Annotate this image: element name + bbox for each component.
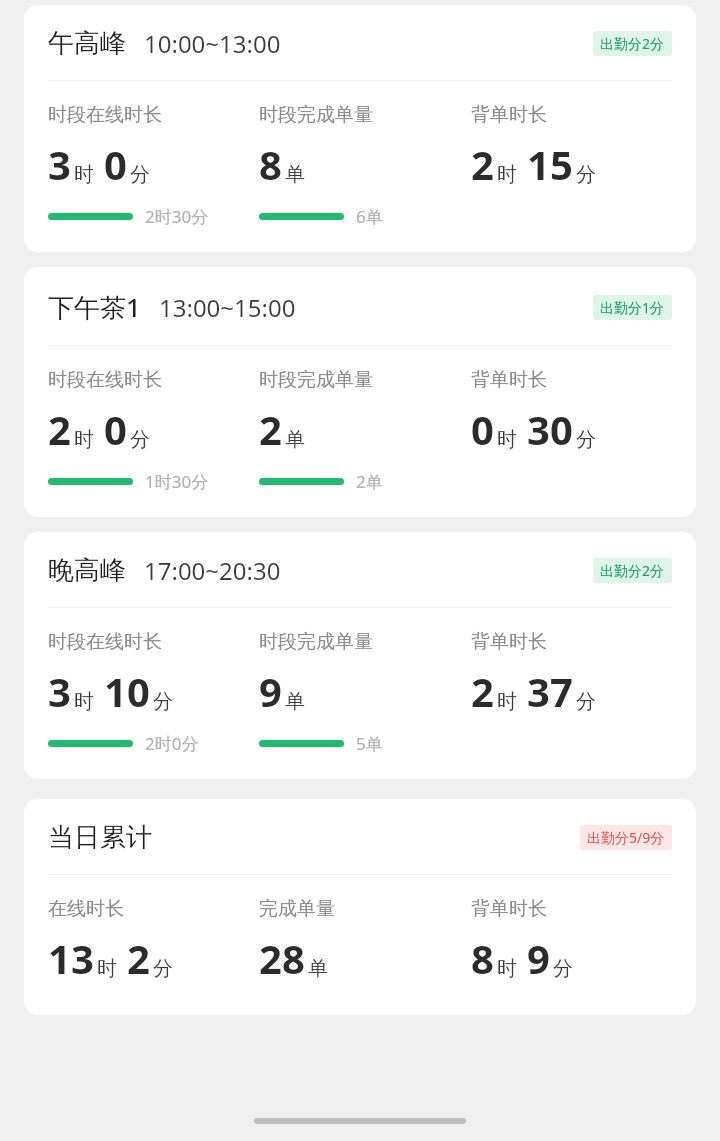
button[interactable]: 晚高峰 xyxy=(24,532,696,779)
staticText: 午高峰 xyxy=(48,27,126,60)
staticText: 时段在线时长 xyxy=(48,630,162,654)
staticText: 2 xyxy=(259,402,282,456)
staticText: 2时0分 xyxy=(145,732,199,755)
staticText: 单 xyxy=(285,427,305,452)
button[interactable]: 出勤分2分 xyxy=(593,31,672,56)
staticText: 2时30分 xyxy=(145,205,209,228)
staticText: 15 xyxy=(527,137,573,191)
staticText: 0 xyxy=(104,402,127,456)
staticText: 9 xyxy=(527,931,550,985)
staticText: 分 xyxy=(130,427,150,452)
staticText: 17:00~20:30 xyxy=(144,554,281,587)
staticText: 背单时长 xyxy=(471,368,547,392)
button[interactable]: 出勤分1分 xyxy=(593,295,672,320)
staticText: 3 xyxy=(48,664,71,718)
button[interactable]: 当日累计 xyxy=(24,799,696,1015)
staticText: 分 xyxy=(576,689,596,714)
staticText: 2 xyxy=(48,402,71,456)
staticText: 2 xyxy=(471,137,494,191)
staticText: 分 xyxy=(576,427,596,452)
staticText: 6单 xyxy=(356,205,383,228)
staticText: 2 xyxy=(471,664,494,718)
staticText: 时段在线时长 xyxy=(48,103,162,127)
staticText: 出勤分2分 xyxy=(600,34,665,53)
staticText: 下午茶1 xyxy=(48,289,141,325)
staticText: 分 xyxy=(153,956,173,981)
button[interactable]: 出勤分5/9分 xyxy=(580,825,672,850)
staticText: 37 xyxy=(527,664,573,718)
staticText: 时段完成单量 xyxy=(259,368,373,392)
staticText: 时 xyxy=(497,162,517,187)
staticText: 时 xyxy=(74,162,94,187)
staticText: 完成单量 xyxy=(259,897,335,921)
staticText: 单 xyxy=(285,689,305,714)
staticText: 时 xyxy=(74,689,94,714)
staticText: 分 xyxy=(576,162,596,187)
staticText: 1时30分 xyxy=(145,470,209,493)
staticText: 在线时长 xyxy=(48,897,124,921)
staticText: 出勤分5/9分 xyxy=(587,828,665,847)
staticText: 晚高峰 xyxy=(48,554,126,587)
staticText: 8 xyxy=(259,137,282,191)
staticText: 背单时长 xyxy=(471,103,547,127)
staticText: 时 xyxy=(97,956,117,981)
staticText: 10 xyxy=(104,664,150,718)
staticText: 30 xyxy=(527,402,573,456)
staticText: 时段完成单量 xyxy=(259,103,373,127)
staticText: 2 xyxy=(127,931,150,985)
staticText: 时 xyxy=(497,427,517,452)
staticText: 13 xyxy=(48,931,94,985)
staticText: 时 xyxy=(497,956,517,981)
staticText: 分 xyxy=(130,162,150,187)
staticText: 分 xyxy=(153,689,173,714)
staticText: 时 xyxy=(497,689,517,714)
button[interactable]: 出勤分2分 xyxy=(593,558,672,583)
staticText: 5单 xyxy=(356,732,383,755)
staticText: 单 xyxy=(308,956,328,981)
staticText: 背单时长 xyxy=(471,630,547,654)
staticText: 2单 xyxy=(356,470,383,493)
staticText: 28 xyxy=(259,931,305,985)
staticText: 0 xyxy=(104,137,127,191)
staticText: 出勤分2分 xyxy=(600,561,665,580)
staticText: 当日累计 xyxy=(48,821,152,854)
staticText: 8 xyxy=(471,931,494,985)
staticText: 背单时长 xyxy=(471,897,547,921)
staticText: 分 xyxy=(553,956,573,981)
staticText: 时段完成单量 xyxy=(259,630,373,654)
staticText: 13:00~15:00 xyxy=(159,291,296,324)
staticText: 时 xyxy=(74,427,94,452)
staticText: 10:00~13:00 xyxy=(144,27,281,60)
staticText: 时段在线时长 xyxy=(48,368,162,392)
staticText: 9 xyxy=(259,664,282,718)
staticText: 出勤分1分 xyxy=(600,298,665,317)
button[interactable]: 下午茶1 xyxy=(24,267,696,517)
button[interactable]: 午高峰 xyxy=(24,5,696,252)
staticText: 单 xyxy=(285,162,305,187)
staticText: 0 xyxy=(471,402,494,456)
staticText: 3 xyxy=(48,137,71,191)
